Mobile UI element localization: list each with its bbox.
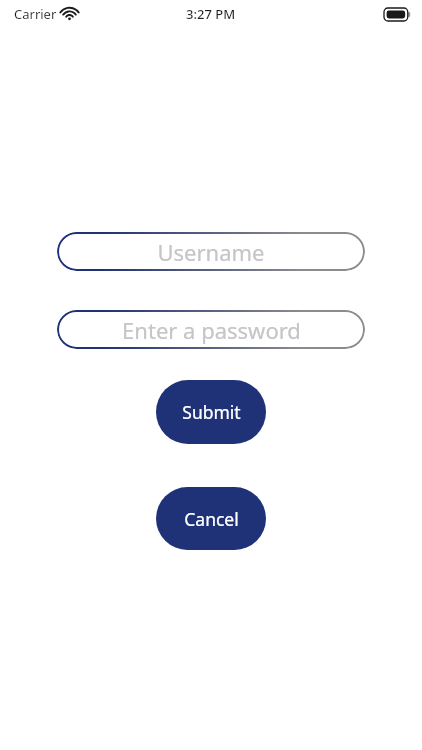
button[interactable]: Username xyxy=(57,232,365,271)
staticText: Carrier xyxy=(14,5,57,23)
staticText: Cancel xyxy=(184,507,239,531)
button[interactable]: Submit xyxy=(156,380,266,444)
staticText: Username xyxy=(157,237,265,267)
staticText: 3:27 PM xyxy=(186,5,236,23)
staticText: Enter a password xyxy=(122,315,301,345)
staticText: Submit xyxy=(182,400,241,424)
button[interactable]: Enter a password xyxy=(57,310,365,349)
button[interactable]: Cancel xyxy=(156,487,266,550)
